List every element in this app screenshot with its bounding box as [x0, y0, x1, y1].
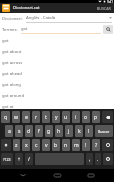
button[interactable]: mic: [15, 153, 23, 165]
button[interactable]: b: [52, 139, 60, 151]
staticText: BUSCAR: [97, 6, 111, 11]
button[interactable]: Buscar: [95, 125, 113, 137]
button[interactable]: back: [102, 111, 113, 123]
button[interactable]: ?123: [1, 153, 13, 165]
staticText: got across: [2, 60, 23, 66]
button[interactable]: Home: [46, 169, 68, 182]
staticText: ,: [89, 156, 91, 163]
button[interactable]: r: [32, 111, 40, 123]
button[interactable]: p: [92, 111, 100, 123]
staticText: got about: [2, 49, 22, 55]
button[interactable]: App icon: [2, 4, 10, 12]
button[interactable]: got around: [0, 90, 114, 101]
staticText: q: [4, 114, 8, 121]
button[interactable]: k: [75, 125, 83, 137]
staticText: m: [74, 142, 79, 149]
button[interactable]: ,: [86, 153, 93, 165]
staticText: ?: [95, 142, 98, 149]
button[interactable]: w: [12, 111, 20, 123]
staticText: t: [45, 114, 47, 121]
staticText: y: [55, 114, 58, 121]
staticText: l: [88, 128, 90, 135]
button[interactable]: n: [62, 139, 70, 151]
button[interactable]: q: [1, 111, 10, 123]
staticText: got: [21, 26, 28, 32]
staticText: s: [18, 128, 21, 135]
button[interactable]: Recents: [80, 169, 102, 182]
staticText: Diccionari:: [2, 16, 23, 22]
button[interactable]: a: [5, 125, 13, 137]
staticText: Diccionari.cat: [13, 5, 40, 11]
button[interactable]: emoji: [102, 139, 113, 151]
button[interactable]: got about: [0, 46, 114, 57]
button[interactable]: ?: [92, 139, 100, 151]
button[interactable]: j: [65, 125, 73, 137]
staticText: Termes:: [2, 27, 18, 33]
button[interactable]: y: [52, 111, 60, 123]
staticText: g: [47, 128, 51, 135]
button[interactable]: f: [35, 125, 43, 137]
button[interactable]: e: [22, 111, 30, 123]
staticText: n: [64, 142, 68, 149]
staticText: f: [38, 128, 40, 135]
button[interactable]: Back: [12, 169, 34, 182]
button[interactable]: h: [55, 125, 63, 137]
staticText: a: [8, 128, 11, 135]
button[interactable]: got: [0, 35, 114, 46]
button[interactable]: c: [32, 139, 40, 151]
button[interactable]: BUSCAR: [94, 3, 114, 13]
button[interactable]: /: [25, 153, 33, 165]
staticText: .: [97, 156, 99, 163]
staticText: ?123: [3, 157, 11, 162]
button[interactable]: m: [72, 139, 80, 151]
button[interactable]: x: [22, 139, 30, 151]
button[interactable]: globe: [103, 153, 113, 165]
staticText: Buscar: [98, 129, 110, 134]
staticText: u: [64, 114, 68, 121]
button[interactable]: s: [15, 125, 23, 137]
staticText: got at: [2, 104, 14, 110]
staticText: /: [28, 156, 30, 163]
staticText: k: [78, 128, 81, 135]
staticText: got along: [2, 82, 21, 88]
staticText: p: [94, 114, 98, 121]
button[interactable]: u: [62, 111, 70, 123]
button[interactable]: .: [95, 153, 101, 165]
staticText: got: [2, 38, 9, 44]
button[interactable]: g: [45, 125, 53, 137]
staticText: z: [15, 142, 18, 149]
staticText: i: [75, 114, 77, 121]
button[interactable]: t: [42, 111, 50, 123]
staticText: got ahead: [2, 71, 22, 77]
button[interactable]: v: [42, 139, 50, 151]
staticText: j: [68, 128, 70, 135]
button[interactable]: d: [25, 125, 33, 137]
staticText: x: [25, 142, 28, 149]
button[interactable]: o: [82, 111, 90, 123]
staticText: Anglès - Català: [26, 15, 56, 21]
staticText: o: [84, 114, 88, 121]
staticText: h: [57, 128, 61, 135]
staticText: w: [14, 114, 18, 121]
staticText: d: [27, 128, 31, 135]
button[interactable]: l: [85, 125, 93, 137]
button[interactable]: i: [72, 111, 80, 123]
staticText: !: [85, 142, 87, 149]
button[interactable]: got across: [0, 57, 114, 68]
button[interactable]: got ahead: [0, 68, 114, 79]
button[interactable]: z: [13, 139, 20, 151]
button[interactable]: got along: [0, 79, 114, 90]
staticText: e: [25, 114, 28, 121]
staticText: got around: [2, 93, 24, 99]
staticText: b: [54, 142, 58, 149]
staticText: v: [45, 142, 48, 149]
staticText: c: [35, 142, 38, 149]
button[interactable]: !: [82, 139, 90, 151]
staticText: 9:41: [107, 0, 113, 3]
button[interactable]: got at: [0, 101, 114, 112]
staticText: r: [35, 114, 38, 121]
button[interactable]: shift: [1, 139, 11, 151]
button[interactable]: Select dictionary: [26, 15, 112, 23]
button[interactable]: Search: [103, 25, 113, 34]
